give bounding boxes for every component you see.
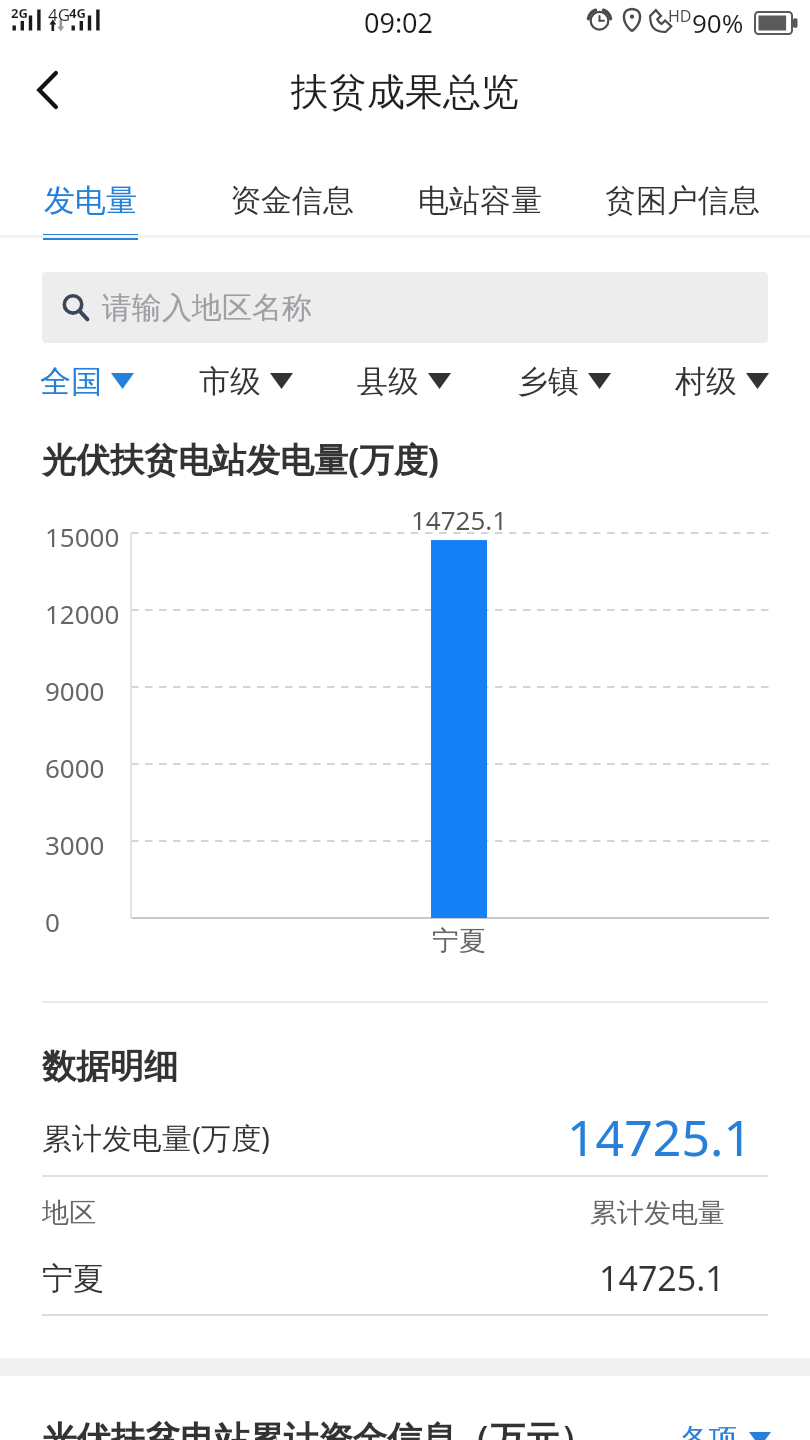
staticText: 12000 [45,596,120,631]
button[interactable]: 资金信息 [197,158,387,242]
staticText: 资金信息 [230,181,354,220]
staticText: 地区 [42,1196,96,1230]
button[interactable]: 村级 [652,352,792,410]
staticText: 宁夏 [42,1259,104,1298]
staticText: 全国 [40,362,102,401]
staticText: 4G [69,4,86,22]
staticText: 光伏扶贫电站发电量(万度) [42,436,440,482]
staticText: 0 [45,904,60,939]
staticText: 15000 [45,519,120,554]
staticText: 电站容量 [418,181,542,220]
button[interactable]: 发电量 [0,158,185,242]
staticText: 数据明细 [42,1045,178,1088]
staticText: 光伏扶贫电站累计资金信息（万元） [42,1418,594,1440]
staticText: 乡镇 [517,362,579,401]
button[interactable]: 各项 [680,1417,771,1440]
button[interactable]: 宁夏 [42,1242,768,1314]
staticText: 贫困户信息 [605,181,760,220]
button[interactable]: 全国 [17,352,157,410]
staticText: 3000 [45,827,105,862]
staticText: 宁夏 [409,924,509,958]
staticText: 90% [692,5,744,40]
staticText: 发电量 [44,181,137,220]
button[interactable]: 乡镇 [494,352,634,410]
staticText: 市级 [199,362,261,401]
staticText: 县级 [357,362,419,401]
staticText: 14725.1 [567,1103,752,1171]
button[interactable]: 市级 [176,352,316,410]
staticText: 14725.1 [599,1255,725,1301]
staticText: 累计发电量(万度) [42,1117,270,1158]
staticText: 累计发电量 [590,1196,725,1230]
button[interactable]: Back [13,55,83,125]
staticText: 9000 [45,673,105,708]
staticText: 14725.1 [359,502,559,537]
staticText: 6000 [45,750,105,785]
staticText: 请输入地区名称 [102,289,312,327]
staticText: 2G [11,4,28,22]
staticText: 村级 [675,362,737,401]
staticText: 扶贫成果总览 [291,68,519,116]
button[interactable]: 县级 [334,352,474,410]
button[interactable]: 请输入地区名称 [42,272,768,343]
staticText: HD [668,5,692,27]
staticText: 4G [48,3,71,26]
button[interactable]: 电站容量 [385,158,575,242]
staticText: 09:02 [364,4,434,41]
staticText: 各项 [680,1421,738,1440]
button[interactable]: 累计发电量(万度) [42,1101,768,1173]
button[interactable]: 贫困户信息 [587,158,777,242]
